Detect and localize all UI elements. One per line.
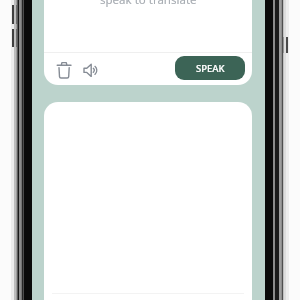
staticText: speak to translate	[100, 0, 197, 8]
button[interactable]	[56, 61, 73, 80]
staticText: SPEAK	[196, 62, 225, 75]
button[interactable]	[83, 63, 102, 79]
button[interactable]: SPEAK	[175, 56, 245, 80]
